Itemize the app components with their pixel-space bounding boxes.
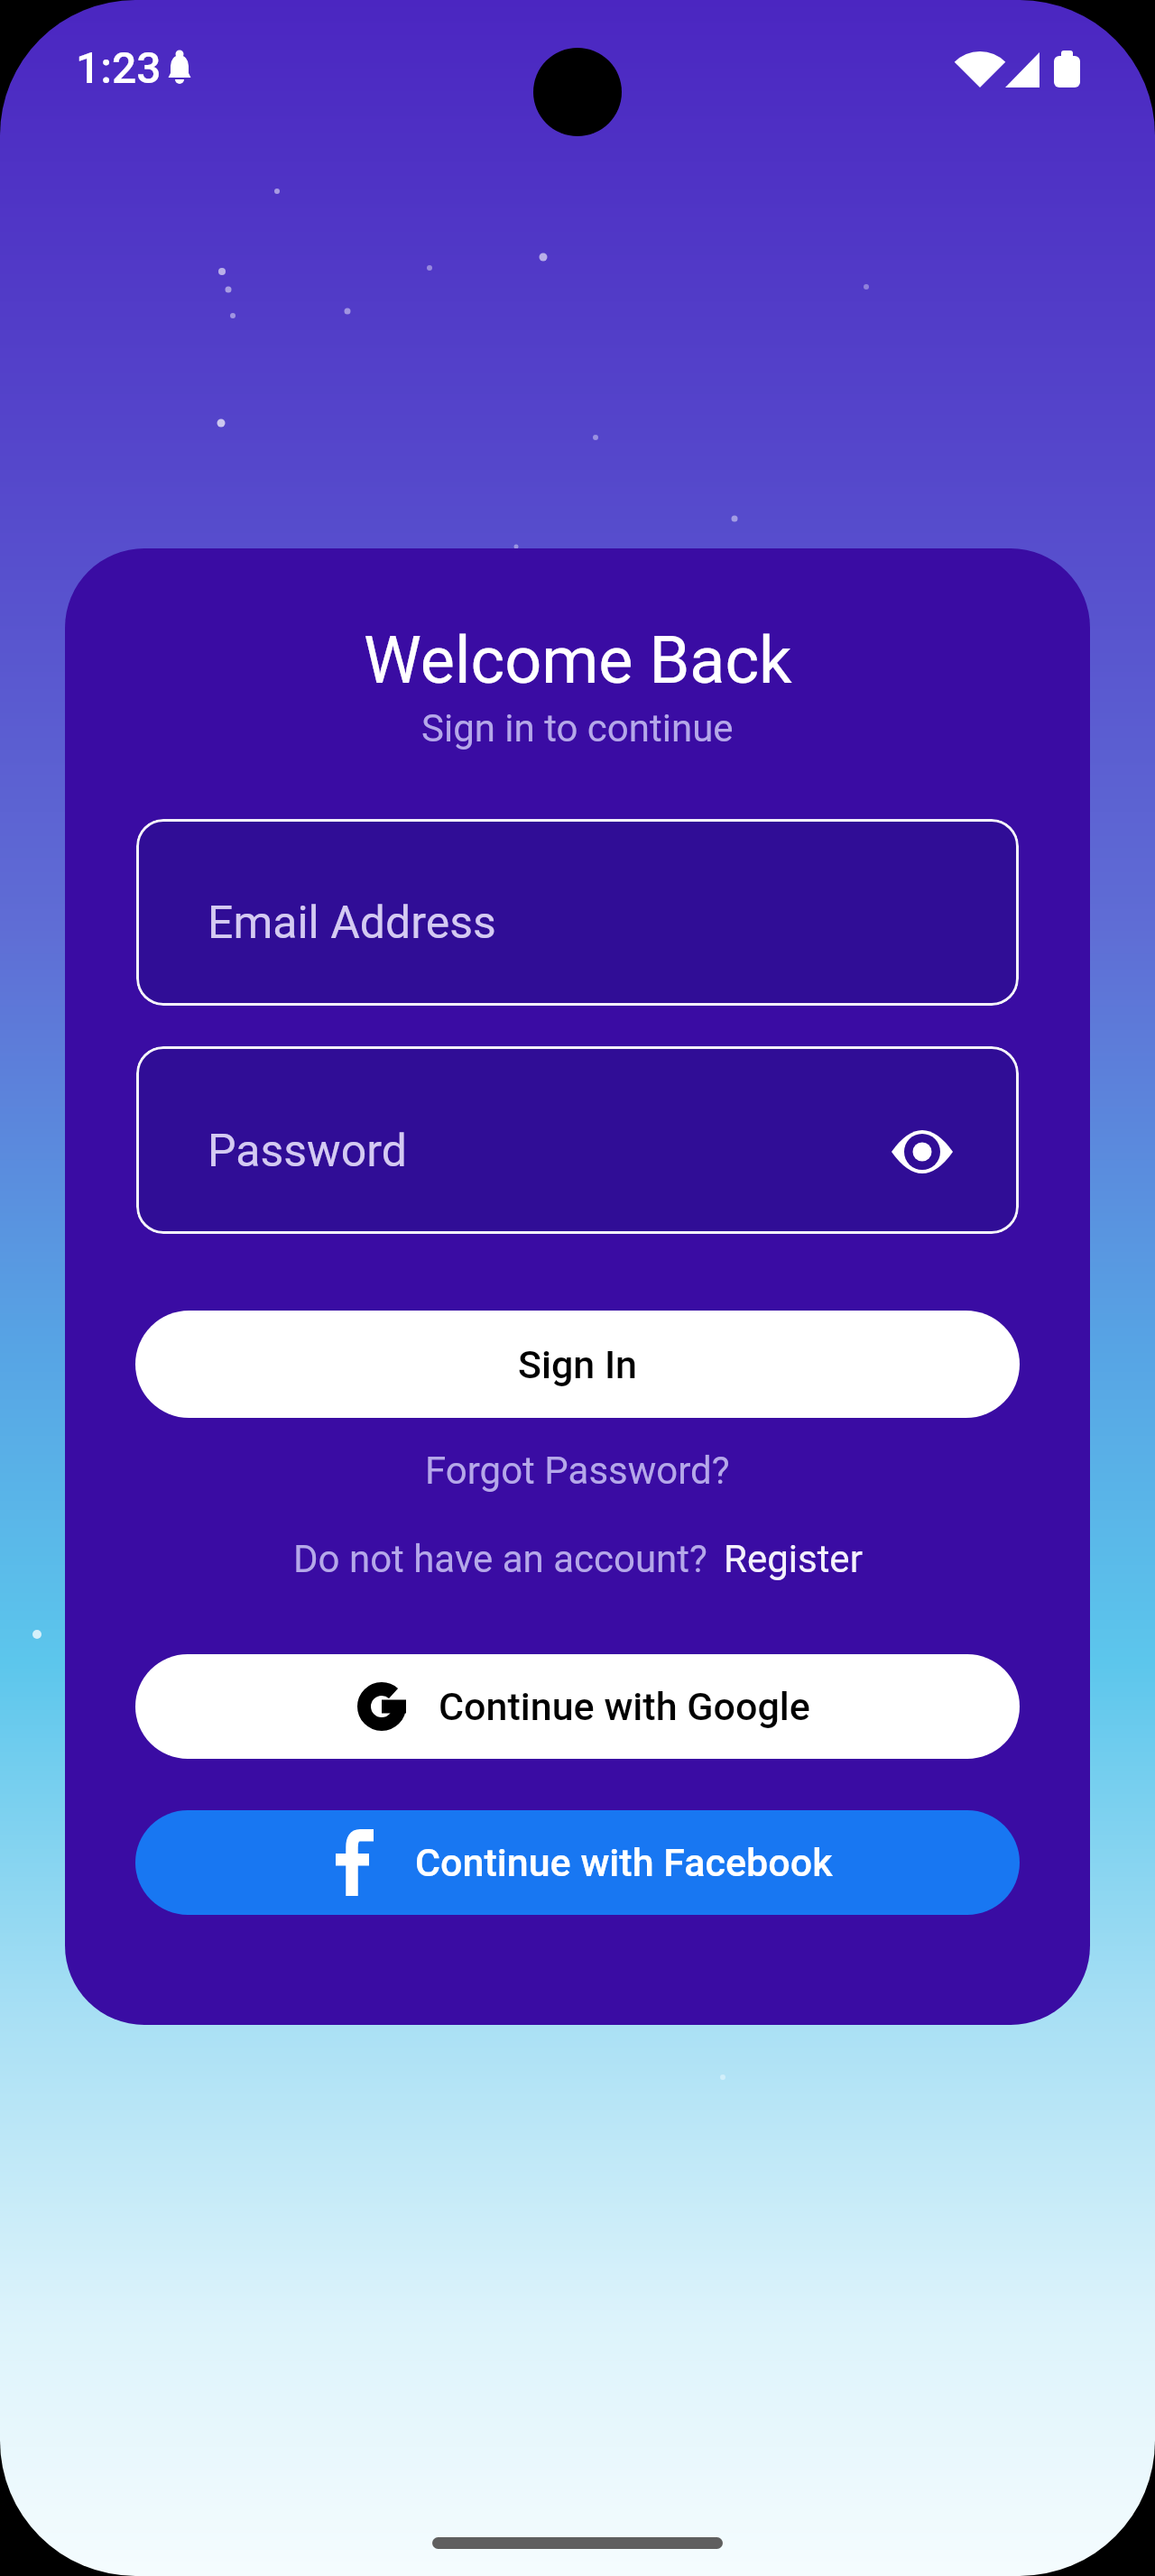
- button[interactable]: Sign In: [135, 1311, 1020, 1418]
- staticText: Forgot Password?: [425, 1449, 730, 1493]
- staticText: Register: [724, 1537, 863, 1581]
- staticText: Email Address: [208, 897, 496, 950]
- button[interactable]: Continue with Google: [135, 1654, 1020, 1759]
- staticText: 1:23: [76, 42, 162, 93]
- button[interactable]: Continue with Facebook: [135, 1810, 1020, 1915]
- staticText: Password: [208, 1125, 407, 1178]
- staticText: Continue with Facebook: [415, 1840, 833, 1885]
- staticText: Sign In: [518, 1342, 638, 1387]
- button[interactable]: Forgot Password?: [425, 1449, 730, 1493]
- staticText: Continue with Google: [439, 1684, 810, 1729]
- staticText: Sign in to continue: [421, 706, 734, 750]
- button[interactable]: Password: [136, 1046, 1019, 1234]
- button[interactable]: Register: [724, 1537, 863, 1581]
- staticText: Do not have an account?: [293, 1537, 707, 1581]
- staticText: Welcome Back: [364, 622, 792, 698]
- button[interactable]: Email Address: [136, 819, 1019, 1006]
